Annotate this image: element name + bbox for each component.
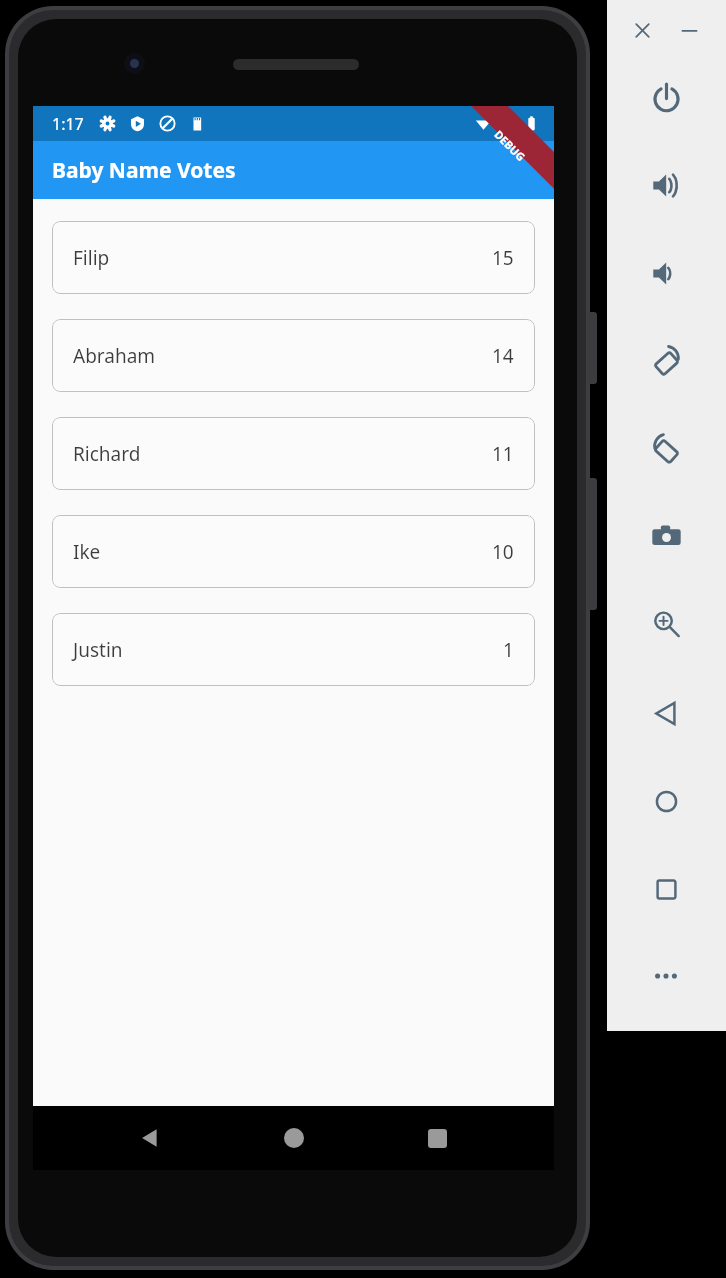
staticText: DEBUG xyxy=(491,127,529,164)
button[interactable]: Volume up xyxy=(640,159,692,211)
button[interactable]: Volume down xyxy=(640,247,692,299)
staticText: Baby Name Votes xyxy=(52,156,236,185)
button[interactable]: More options xyxy=(640,950,692,1002)
staticText: 11 xyxy=(492,441,514,467)
button[interactable]: Rotate left xyxy=(640,335,692,387)
staticText: 14 xyxy=(492,343,514,369)
button[interactable]: Filip xyxy=(52,221,535,294)
button[interactable]: Zoom xyxy=(640,598,692,650)
staticText: Filip xyxy=(73,245,110,271)
button[interactable]: Power xyxy=(640,71,692,123)
button[interactable]: Back xyxy=(640,687,692,739)
button[interactable]: Close xyxy=(625,13,659,47)
staticText: 15 xyxy=(492,245,514,271)
staticText: Abraham xyxy=(73,343,156,369)
button[interactable]: Take screenshot xyxy=(640,510,692,562)
button[interactable]: Home xyxy=(640,775,692,827)
staticText: 1:17 xyxy=(52,113,84,135)
button[interactable]: Overview xyxy=(640,863,692,915)
button[interactable]: Abraham xyxy=(52,319,535,392)
staticText: 1 xyxy=(503,637,514,663)
staticText: Richard xyxy=(73,441,141,467)
button[interactable]: Home xyxy=(267,1111,321,1165)
button[interactable]: Rotate right xyxy=(640,423,692,475)
staticText: Ike xyxy=(73,539,101,565)
button[interactable]: Minimize xyxy=(672,13,706,47)
staticText: Justin xyxy=(73,637,123,663)
button[interactable]: Ike xyxy=(52,515,535,588)
staticText: 10 xyxy=(492,539,514,565)
button[interactable]: Richard xyxy=(52,417,535,490)
button[interactable]: Justin xyxy=(52,613,535,686)
button[interactable]: Back xyxy=(123,1111,177,1165)
button[interactable]: Recent apps xyxy=(410,1111,464,1165)
